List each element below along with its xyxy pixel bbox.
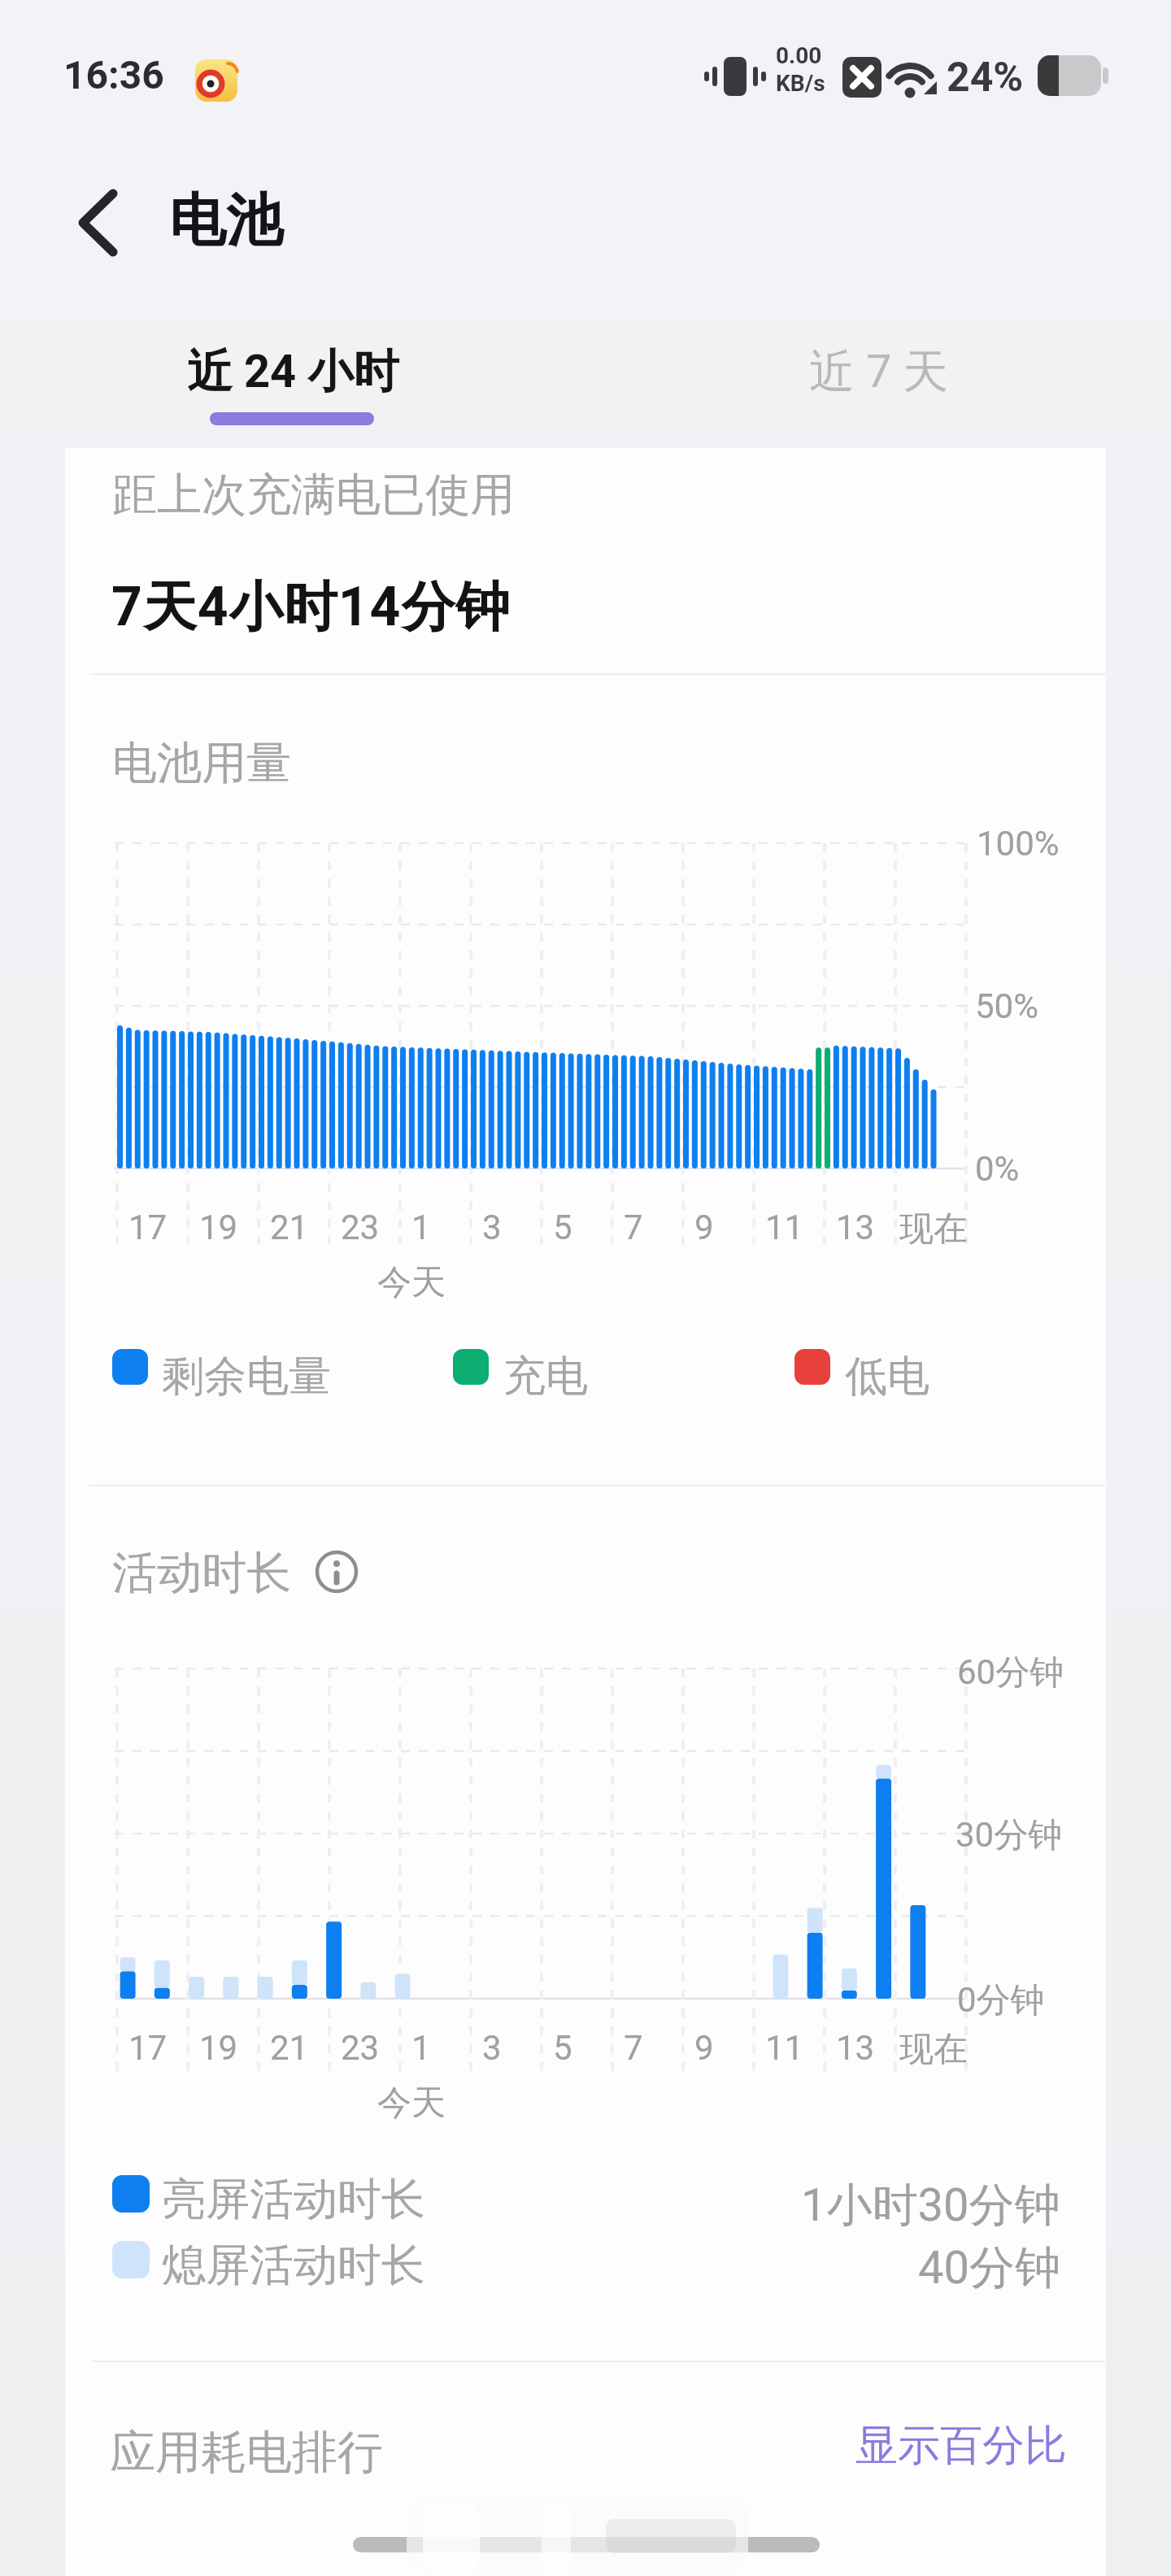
staticText: 23 — [341, 2028, 380, 2068]
staticText: 现在 — [899, 1207, 968, 1251]
staticText: 11 — [765, 2028, 804, 2068]
staticText: 低电 — [845, 1350, 929, 1403]
staticText: 100% — [977, 824, 1060, 864]
staticText: 13 — [836, 1207, 875, 1247]
staticText: 熄屏活动时长 — [162, 2238, 425, 2293]
staticText: 0% — [975, 1149, 1020, 1189]
staticText: 0分钟 — [957, 1979, 1045, 2022]
staticText: 5 — [553, 2028, 572, 2068]
staticText: 11 — [765, 1207, 804, 1247]
staticText: 今天 — [377, 2082, 446, 2125]
staticText: 1小时30分钟 — [801, 2177, 1060, 2234]
staticText: 近 7 天 — [809, 343, 949, 401]
staticText: KB/s — [776, 70, 825, 97]
staticText: 21 — [270, 1207, 309, 1247]
staticText: 今天 — [377, 1261, 446, 1304]
staticText: 50% — [975, 986, 1038, 1026]
staticText: 19 — [199, 1207, 238, 1247]
staticText: 电池 — [169, 185, 283, 257]
staticText: 60分钟 — [957, 1651, 1064, 1695]
staticText: 5 — [553, 1207, 572, 1247]
staticText: 1 — [411, 2028, 431, 2068]
staticText: 16:36 — [63, 52, 164, 98]
staticText: 7天4小时14分钟 — [111, 573, 511, 641]
staticText: 充电 — [503, 1350, 588, 1403]
staticText: 显示百分比 — [855, 2419, 1067, 2473]
staticText: 电池用量 — [112, 735, 291, 791]
staticText: 13 — [836, 2028, 875, 2068]
staticText: 现在 — [899, 2028, 968, 2071]
staticText: 距上次充满电已使用 — [112, 467, 515, 523]
staticText: 1 — [411, 1207, 431, 1247]
staticText: 23 — [341, 1207, 380, 1247]
staticText: 9 — [694, 2028, 714, 2068]
staticText: 40分钟 — [918, 2239, 1060, 2297]
staticText: 近 24 小时 — [187, 343, 399, 401]
staticText: 3 — [482, 1207, 502, 1247]
staticText: 亮屏活动时长 — [162, 2172, 425, 2227]
staticText: 0.00 — [776, 42, 822, 69]
staticText: 剩余电量 — [162, 1350, 331, 1403]
button[interactable] — [65, 183, 138, 256]
staticText: 9 — [694, 1207, 714, 1247]
staticText: 17 — [128, 1207, 168, 1247]
staticText: 24% — [947, 54, 1024, 102]
staticText: 3 — [482, 2028, 502, 2068]
button[interactable]: 显示百分比 — [815, 2419, 1067, 2476]
button[interactable]: 近 7 天 — [786, 339, 973, 404]
staticText: 应用耗电排行 — [110, 2424, 383, 2482]
staticText: 30分钟 — [956, 1814, 1063, 1857]
staticText: 7 — [624, 2028, 643, 2068]
staticText: 活动时长 — [112, 1545, 291, 1601]
staticText: 17 — [128, 2028, 168, 2068]
button[interactable]: 近 24 小时 — [183, 339, 403, 404]
staticText: 7 — [624, 1207, 643, 1247]
staticText: 21 — [270, 2028, 309, 2068]
staticText: 19 — [199, 2028, 238, 2068]
